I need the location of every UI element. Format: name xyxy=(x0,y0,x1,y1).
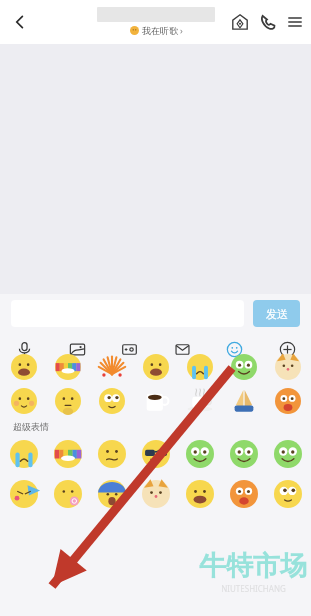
button[interactable]: Menu xyxy=(282,9,308,35)
button[interactable]: 我在听歌 xyxy=(130,24,183,36)
staticText: NIUTESHICHANG xyxy=(221,583,286,594)
button[interactable]: Call xyxy=(254,8,282,36)
staticText: 我在听歌 xyxy=(142,25,178,36)
staticText: 超级表情 xyxy=(13,421,49,432)
button[interactable]: 发送 xyxy=(253,300,300,327)
button[interactable]: Voice xyxy=(10,335,38,363)
staticText: 发送 xyxy=(266,307,288,321)
button[interactable]: More xyxy=(273,335,301,363)
button[interactable]: Home xyxy=(226,8,254,36)
staticText: 牛特市场 xyxy=(199,549,307,583)
button[interactable]: Message xyxy=(168,335,196,363)
button[interactable]: Emoji xyxy=(220,335,248,363)
button[interactable]: Camera xyxy=(115,335,143,363)
button[interactable]: Photo xyxy=(63,335,91,363)
button[interactable]: Back xyxy=(4,6,36,38)
staticText: › xyxy=(180,24,183,36)
